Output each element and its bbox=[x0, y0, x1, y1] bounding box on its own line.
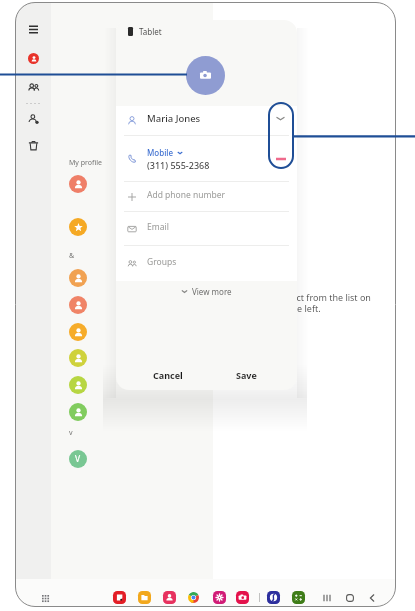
button[interactable]: Groups bbox=[116, 246, 297, 281]
button[interactable]: Samsung Notes bbox=[113, 591, 126, 604]
staticText: Tablet bbox=[139, 26, 162, 37]
button[interactable]: All apps bbox=[40, 593, 51, 604]
staticText: Add phone number bbox=[147, 189, 225, 201]
button[interactable] bbox=[69, 403, 87, 421]
button[interactable]: Email bbox=[116, 212, 297, 245]
button[interactable]: V bbox=[69, 450, 87, 468]
button[interactable]: Calculator bbox=[292, 591, 305, 604]
staticText: Email bbox=[147, 221, 169, 233]
button[interactable] bbox=[69, 296, 87, 314]
button[interactable]: Back bbox=[364, 590, 380, 606]
button[interactable]: Chrome bbox=[187, 591, 200, 604]
button[interactable]: Save bbox=[214, 365, 278, 385]
staticText: (311) 555-2368 bbox=[147, 159, 210, 171]
button[interactable]: Cancel bbox=[136, 365, 200, 385]
button[interactable] bbox=[69, 218, 87, 236]
staticText: My profile bbox=[69, 158, 102, 168]
staticText: Mobile bbox=[147, 147, 174, 158]
button[interactable]: Camera bbox=[236, 591, 249, 604]
staticText: & bbox=[69, 251, 75, 261]
button[interactable] bbox=[69, 269, 87, 287]
staticText: Maria Jones bbox=[147, 112, 201, 125]
staticText: Cancel bbox=[153, 369, 183, 381]
staticText: Groups bbox=[147, 256, 177, 268]
button[interactable]: View more bbox=[116, 282, 297, 300]
button[interactable]: Home bbox=[342, 590, 358, 606]
button[interactable] bbox=[69, 376, 87, 394]
button[interactable]: Change photo bbox=[186, 56, 225, 95]
staticText: View more bbox=[192, 286, 232, 297]
staticText: Save bbox=[236, 369, 257, 381]
button[interactable]: Menu bbox=[24, 20, 42, 38]
button[interactable]: Maria Jones bbox=[116, 106, 297, 135]
button[interactable]: Groups bbox=[24, 79, 42, 97]
button[interactable]: Expand bbox=[275, 114, 286, 123]
button[interactable]: Recents bbox=[319, 590, 335, 606]
button[interactable]: Add phone number bbox=[116, 182, 297, 211]
button[interactable]: Remove bbox=[276, 155, 286, 163]
button[interactable]: Clock bbox=[267, 591, 280, 604]
staticText: V bbox=[75, 453, 81, 465]
button[interactable] bbox=[69, 175, 87, 193]
button[interactable]: Trash bbox=[24, 136, 42, 154]
button[interactable] bbox=[69, 349, 87, 367]
button[interactable]: Mobile bbox=[116, 136, 297, 181]
staticText: v bbox=[69, 428, 73, 438]
button[interactable]: Manage contacts bbox=[24, 110, 42, 128]
button[interactable]: Settings bbox=[213, 591, 226, 604]
button[interactable]: My Files bbox=[138, 591, 151, 604]
button[interactable]: Contacts bbox=[24, 49, 42, 67]
button[interactable]: Contacts bbox=[163, 591, 176, 604]
staticText: Select a contact from the list on the le… bbox=[238, 291, 371, 315]
button[interactable] bbox=[69, 323, 87, 341]
